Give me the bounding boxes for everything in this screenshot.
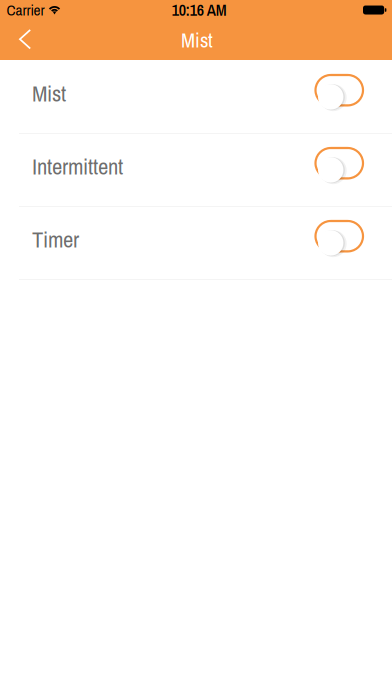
button[interactable]: Mist bbox=[0, 61, 392, 134]
staticText: 10:16 AM bbox=[172, 0, 227, 21]
button[interactable]: Intermittent bbox=[0, 134, 392, 207]
button[interactable]: Back bbox=[0, 20, 50, 60]
staticText: Mist bbox=[32, 78, 66, 108]
staticText: Timer bbox=[32, 224, 79, 254]
staticText: Mist bbox=[181, 26, 213, 54]
staticText: Carrier bbox=[6, 0, 44, 20]
staticText: Intermittent bbox=[32, 151, 123, 181]
button[interactable]: Timer bbox=[0, 207, 392, 280]
